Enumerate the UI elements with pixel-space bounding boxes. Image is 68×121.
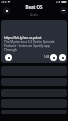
- button[interactable]: Play: [50, 54, 57, 61]
- button[interactable]: Record: [5, 54, 12, 61]
- button[interactable]: Menu: [60, 7, 67, 14]
- staticText: Through: [4, 48, 17, 52]
- staticText: The Mysterious S.3 Drake Episode: [4, 40, 55, 44]
- staticText: Audio: [0, 13, 68, 17]
- button[interactable]: Next: [59, 54, 66, 61]
- staticText: Podcast • Listen on Spotify app: [4, 44, 51, 48]
- staticText: Beat OS: [0, 4, 68, 10]
- staticText: 1:05: [44, 55, 50, 59]
- button[interactable]: https://bit.ly/am-ss-pdcst: [1, 20, 67, 63]
- button[interactable]: Stop: [3, 7, 10, 14]
- button[interactable]: [1, 110, 67, 114]
- staticText: https://bit.ly/am-ss-pdcst: [4, 36, 42, 40]
